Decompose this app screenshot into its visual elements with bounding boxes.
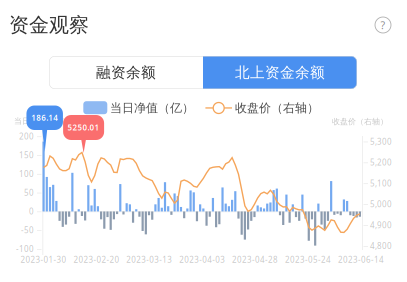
staticText: 收盘价（右轴） bbox=[332, 117, 388, 126]
staticText: 100 bbox=[19, 169, 34, 179]
staticText: 2023-06-14 bbox=[338, 254, 384, 265]
button[interactable]: 北上资金余额 bbox=[203, 56, 357, 89]
staticText: 融资余额 bbox=[96, 63, 156, 81]
staticText: 当日净值（亿） bbox=[14, 116, 70, 126]
staticText: 5,300 bbox=[370, 136, 392, 147]
staticText: 200 bbox=[19, 131, 34, 142]
staticText: 2023-03-13 bbox=[126, 254, 172, 265]
staticText: 2023-02-20 bbox=[73, 254, 119, 265]
staticText: -50 bbox=[21, 225, 34, 235]
staticText: 当日净值（亿） bbox=[110, 101, 194, 115]
staticText: 资金观察 bbox=[9, 13, 89, 37]
staticText: 2023-04-03 bbox=[179, 254, 225, 265]
staticText: ? bbox=[380, 18, 385, 32]
staticText: 186.14 bbox=[31, 112, 58, 123]
staticText: 5,000 bbox=[370, 199, 392, 209]
staticText: 50 bbox=[24, 187, 34, 198]
staticText: 5,100 bbox=[370, 178, 392, 189]
button[interactable]: 帮助 bbox=[371, 13, 395, 37]
staticText: 0 bbox=[29, 206, 34, 217]
staticText: 5,200 bbox=[370, 157, 392, 168]
staticText: 2023-01-30 bbox=[20, 254, 66, 265]
staticText: 北上资金余额 bbox=[235, 63, 325, 81]
button[interactable]: 融资余额 bbox=[49, 56, 203, 89]
staticText: 4,800 bbox=[370, 241, 392, 251]
staticText: 150 bbox=[19, 150, 34, 160]
staticText: 4,900 bbox=[370, 220, 392, 230]
staticText: 2023-04-28 bbox=[232, 254, 278, 265]
staticText: 5250.01 bbox=[68, 122, 100, 133]
staticText: -100 bbox=[16, 244, 34, 254]
staticText: 2023-05-24 bbox=[285, 254, 331, 265]
staticText: 收盘价（右轴） bbox=[235, 101, 319, 115]
